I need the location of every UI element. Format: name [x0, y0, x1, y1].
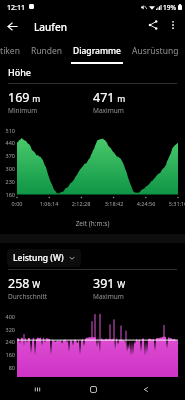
staticText: 1:06:14: [35, 200, 63, 207]
staticText: Zeit (h:m:s): [0, 219, 185, 228]
staticText: 3:18:42: [100, 200, 128, 207]
staticText: Durchschnitt: [8, 292, 48, 301]
staticText: 300: [0, 165, 15, 172]
staticText: 391: [93, 275, 115, 292]
staticText: 2:12:28: [67, 200, 95, 207]
staticText: 320: [0, 326, 15, 333]
staticText: stiken: [0, 45, 20, 57]
staticText: 19%: [163, 3, 176, 12]
staticText: 240: [0, 338, 15, 345]
staticText: 80: [0, 364, 15, 371]
button[interactable]: More options: [163, 15, 183, 35]
staticText: 169: [8, 89, 30, 106]
button[interactable]: Leistung (W): [7, 249, 81, 267]
staticText: 258: [8, 275, 30, 292]
button[interactable]: Home: [82, 378, 104, 400]
staticText: m: [30, 93, 41, 105]
staticText: 370: [0, 152, 15, 159]
staticText: 0:00: [3, 200, 31, 207]
staticText: W: [30, 279, 41, 291]
staticText: Maximum: [93, 292, 124, 301]
button[interactable]: Back: [134, 378, 156, 400]
staticText: 230: [0, 178, 15, 185]
staticText: 160: [0, 351, 15, 358]
button[interactable]: stiken: [0, 40, 20, 62]
staticText: Diagramme: [73, 45, 121, 57]
button[interactable]: Back: [1, 15, 23, 37]
staticText: Maximum: [93, 106, 124, 115]
staticText: Höhe: [8, 66, 32, 78]
button[interactable]: Runden: [24, 40, 69, 62]
staticText: 471: [93, 89, 115, 106]
button[interactable]: Recent apps: [26, 378, 48, 400]
button[interactable]: Share: [143, 15, 163, 35]
staticText: 400: [0, 313, 15, 320]
staticText: W: [115, 279, 126, 291]
button[interactable]: Diagramme: [69, 40, 125, 62]
staticText: Leistung (W): [13, 252, 64, 264]
staticText: 440: [0, 139, 15, 146]
staticText: 4:24:56: [132, 200, 160, 207]
staticText: Minimum: [8, 106, 38, 115]
staticText: Ausrüstung: [132, 45, 179, 57]
staticText: 160: [0, 191, 15, 198]
staticText: m: [115, 93, 126, 105]
button[interactable]: Ausrüstung: [125, 40, 185, 62]
staticText: 5:31:10: [164, 200, 185, 207]
staticText: Laufen: [34, 20, 67, 34]
staticText: Runden: [31, 45, 63, 57]
staticText: 510: [0, 127, 15, 134]
staticText: 12:11: [7, 3, 25, 13]
